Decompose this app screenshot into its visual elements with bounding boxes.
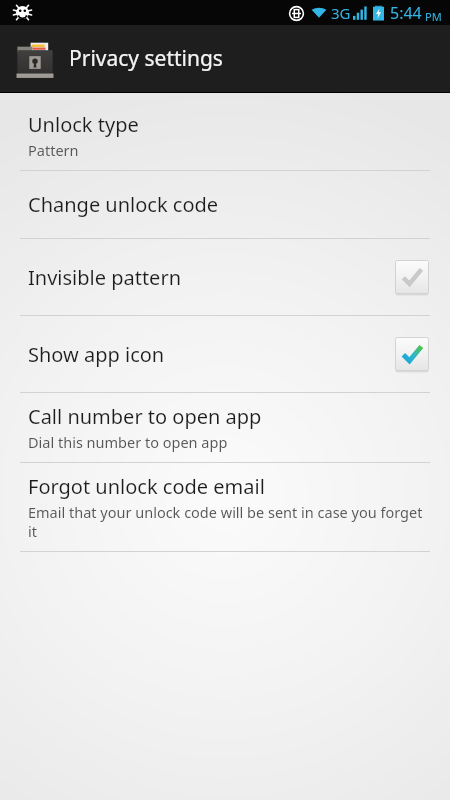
staticText: Privacy settings — [69, 44, 223, 73]
staticText: 3G — [331, 3, 351, 23]
button[interactable]: Change unlock code — [0, 171, 450, 238]
button[interactable]: Call number to open app — [0, 393, 450, 462]
button[interactable]: Checked — [394, 336, 430, 372]
button[interactable]: Forgot unlock code email — [0, 463, 450, 551]
button[interactable]: Show app icon — [0, 316, 450, 392]
staticText: Call number to open app — [28, 403, 262, 430]
button[interactable]: Unlock type — [0, 105, 450, 170]
staticText: Email that your unlock code will be sent… — [28, 502, 430, 541]
staticText: 5:44 — [390, 2, 422, 24]
staticText: PM — [425, 9, 442, 24]
staticText: Unlock type — [28, 111, 139, 138]
button[interactable]: Invisible pattern — [0, 239, 450, 315]
button[interactable]: Unchecked — [394, 259, 430, 295]
staticText: Show app icon — [28, 341, 165, 368]
staticText: Dial this number to open app — [28, 432, 228, 452]
staticText: Forgot unlock code email — [28, 473, 265, 500]
staticText: Invisible pattern — [28, 264, 181, 291]
staticText: Change unlock code — [28, 191, 219, 218]
staticText: Pattern — [28, 140, 79, 160]
